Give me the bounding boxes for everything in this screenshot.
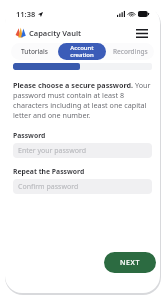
button[interactable]: Enter your password (13, 143, 152, 158)
button[interactable]: Tutorials (11, 43, 58, 60)
staticText: Repeat the Password (13, 167, 85, 176)
staticText: Recordings (113, 47, 148, 56)
button[interactable]: Menu (134, 25, 150, 41)
button[interactable]: Recordings (106, 43, 154, 60)
button[interactable]: Confirm password (13, 179, 152, 194)
button[interactable]: NEXT (104, 252, 156, 273)
staticText: Password (13, 131, 46, 140)
staticText: Please choose a secure password. Your pa… (13, 80, 152, 120)
staticText: Enter your password (18, 146, 86, 156)
staticText: Capacity Vault (29, 28, 82, 38)
staticText: Tutorials (21, 47, 49, 56)
staticText: 11:38 (16, 9, 36, 19)
button[interactable]: Account creation (58, 43, 106, 60)
staticText: Confirm password (18, 182, 79, 192)
staticText: Account creation (70, 44, 94, 59)
staticText: NEXT (120, 258, 140, 268)
